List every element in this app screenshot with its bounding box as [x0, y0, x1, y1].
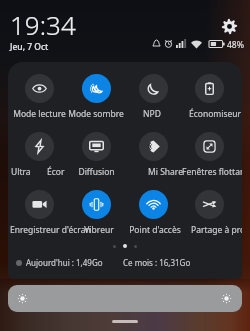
staticText: Écor	[47, 166, 65, 178]
button[interactable]	[181, 127, 238, 179]
staticText: Mode sombre	[68, 108, 124, 120]
staticText: Vibreur	[84, 224, 114, 236]
staticText: 48%	[227, 39, 244, 51]
staticText: Diffusion	[78, 166, 115, 178]
staticText: Aujourd'hui : 1,49Go	[26, 257, 103, 268]
button[interactable]	[11, 127, 68, 179]
button[interactable]	[181, 185, 238, 237]
staticText: 19:34	[10, 7, 76, 42]
button[interactable]: Settings	[221, 18, 238, 35]
button[interactable]	[181, 69, 238, 121]
button[interactable]: Aujourd'hui : 1,49Go	[16, 257, 103, 268]
button[interactable]	[125, 185, 182, 237]
button[interactable]	[11, 69, 68, 121]
staticText: Mode lecture	[13, 108, 66, 120]
staticText: Point d'accès	[129, 224, 181, 236]
staticText: Enregistreur d'écran	[10, 224, 91, 236]
button[interactable]	[68, 185, 125, 237]
staticText: Partage à proximité	[191, 224, 242, 236]
staticText: Fenêtres flottantes	[182, 166, 242, 178]
staticText: NPD	[143, 108, 161, 120]
button[interactable]	[125, 69, 182, 121]
button[interactable]	[68, 127, 125, 179]
button[interactable]	[11, 185, 68, 237]
staticText: Jeu, 7 Oct	[10, 41, 49, 53]
staticText: Ce mois : 16,31Go	[123, 257, 191, 268]
button[interactable]	[125, 127, 182, 179]
staticText: Économiseur de batterie	[189, 108, 242, 120]
button[interactable]	[68, 69, 125, 121]
staticText: Ultra	[11, 166, 31, 178]
staticText: Mi Share	[148, 166, 183, 178]
button[interactable]: Brightness	[8, 285, 242, 312]
